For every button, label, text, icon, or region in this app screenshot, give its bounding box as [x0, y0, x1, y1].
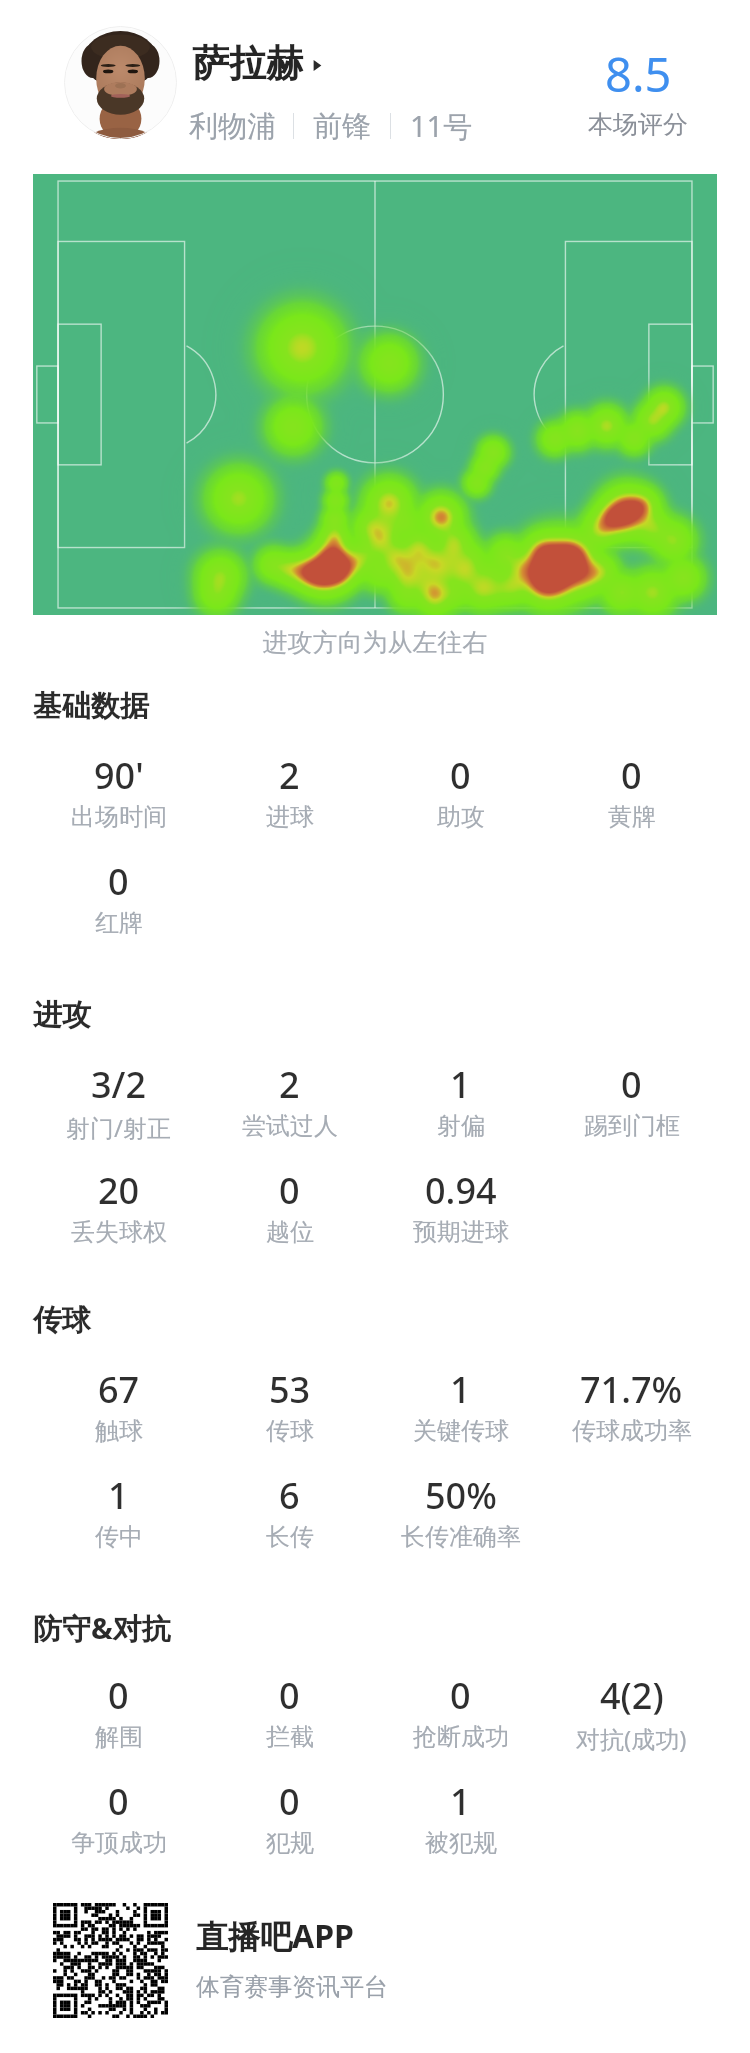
staticText: 拦截	[266, 1722, 314, 1752]
button[interactable]: 2	[204, 751, 375, 837]
staticText: 0	[108, 1777, 129, 1826]
button[interactable]: 1	[375, 1777, 546, 1863]
button[interactable]: 8.5	[548, 42, 728, 140]
button[interactable]: 53	[204, 1365, 375, 1451]
button[interactable]: 0	[375, 751, 546, 837]
staticText: 黄牌	[608, 802, 656, 832]
other: QR code	[53, 1903, 168, 2018]
staticText: 传球成功率	[572, 1416, 692, 1446]
staticText: 射门/射正	[66, 1111, 171, 1144]
staticText: 对抗(成功)	[576, 1722, 687, 1755]
staticText: 传球	[33, 1302, 91, 1339]
button[interactable]: 4(2)	[546, 1671, 717, 1757]
staticText: 传球	[266, 1416, 314, 1446]
button[interactable]: 0	[204, 1671, 375, 1757]
staticText: 前锋	[313, 108, 371, 145]
staticText: 3/2	[91, 1060, 147, 1109]
other: Player photo	[64, 26, 177, 139]
staticText: 0	[279, 1777, 300, 1826]
button[interactable]: 0.94	[375, 1166, 546, 1252]
staticText: 1	[108, 1471, 129, 1520]
staticText: 0	[279, 1671, 300, 1720]
staticText: 本场评分	[588, 109, 688, 140]
staticText: 体育赛事资讯平台	[196, 1972, 388, 2002]
staticText: 11号	[410, 106, 473, 146]
staticText: 长传	[266, 1522, 314, 1552]
staticText: 进攻方向为从左往右	[0, 627, 750, 658]
button[interactable]: 0	[546, 1060, 717, 1146]
staticText: 67	[98, 1365, 140, 1414]
staticText: 萨拉赫	[192, 40, 303, 87]
staticText: 防守&对抗	[33, 1608, 171, 1648]
button[interactable]: 20	[33, 1166, 204, 1252]
staticText: 射偏	[437, 1111, 485, 1141]
staticText: 20	[98, 1166, 140, 1215]
staticText: 直播吧APP	[196, 1914, 354, 1958]
staticText: 0	[108, 1671, 129, 1720]
staticText: 踢到门框	[584, 1111, 680, 1141]
staticText: 出场时间	[71, 802, 167, 832]
staticText: 1	[450, 1365, 471, 1414]
button[interactable]: 0	[33, 857, 204, 943]
staticText: 0	[621, 751, 642, 800]
staticText: 2	[279, 1060, 300, 1109]
button[interactable]: QR code	[53, 1903, 388, 2018]
other: Player touch heat map	[33, 174, 717, 615]
staticText: 0	[279, 1166, 300, 1215]
staticText: 90'	[94, 751, 144, 800]
staticText: 进攻	[33, 997, 91, 1034]
other: Open player profile	[312, 60, 323, 71]
staticText: 助攻	[437, 802, 485, 832]
staticText: 丢失球权	[71, 1217, 167, 1247]
staticText: 关键传球	[413, 1416, 509, 1446]
staticText: 越位	[266, 1217, 314, 1247]
button[interactable]: 67	[33, 1365, 204, 1451]
button[interactable]: 0	[204, 1166, 375, 1252]
button[interactable]: 1	[33, 1471, 204, 1557]
button[interactable]: 0	[33, 1777, 204, 1863]
staticText: 1	[450, 1777, 471, 1826]
staticText: 53	[269, 1365, 311, 1414]
staticText: 0.94	[425, 1166, 497, 1215]
button[interactable]: 0	[33, 1671, 204, 1757]
staticText: 8.5	[605, 42, 672, 106]
button[interactable]: 90'	[33, 751, 204, 837]
staticText: 2	[279, 751, 300, 800]
button[interactable]: 0	[546, 751, 717, 837]
button[interactable]: 50%	[375, 1471, 546, 1557]
staticText: 0	[621, 1060, 642, 1109]
button[interactable]: 2	[204, 1060, 375, 1146]
button[interactable]: 1	[375, 1365, 546, 1451]
staticText: 长传准确率	[401, 1522, 521, 1552]
staticText: 进球	[266, 802, 314, 832]
staticText: 基础数据	[33, 688, 149, 725]
staticText: 传中	[95, 1522, 143, 1552]
staticText: 红牌	[95, 908, 143, 938]
staticText: 尝试过人	[242, 1111, 338, 1141]
staticText: 0	[450, 1671, 471, 1720]
staticText: 预期进球	[413, 1217, 509, 1247]
staticText: 6	[279, 1471, 300, 1520]
button[interactable]: 1	[375, 1060, 546, 1146]
staticText: 1	[450, 1060, 471, 1109]
staticText: 抢断成功	[413, 1722, 509, 1752]
staticText: 0	[108, 857, 129, 906]
staticText: 0	[450, 751, 471, 800]
button[interactable]: 6	[204, 1471, 375, 1557]
staticText: 71.7%	[580, 1365, 683, 1414]
staticText: 犯规	[266, 1828, 314, 1858]
staticText: 解围	[95, 1722, 143, 1752]
staticText: 4(2)	[600, 1671, 664, 1720]
staticText: 被犯规	[425, 1828, 497, 1858]
button[interactable]: 3/2	[33, 1060, 204, 1146]
staticText: 触球	[95, 1416, 143, 1446]
button[interactable]: 71.7%	[546, 1365, 717, 1451]
button[interactable]: 萨拉赫	[192, 40, 323, 87]
button[interactable]: 0	[375, 1671, 546, 1757]
staticText: 50%	[425, 1471, 497, 1520]
staticText: 利物浦	[189, 108, 276, 145]
button[interactable]: Player photo	[0, 0, 750, 160]
staticText: 争顶成功	[71, 1828, 167, 1858]
button[interactable]: 0	[204, 1777, 375, 1863]
